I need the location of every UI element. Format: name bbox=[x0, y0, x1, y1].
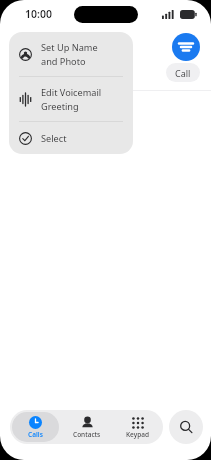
staticText: Call bbox=[175, 67, 191, 79]
button[interactable]: Filter calls bbox=[172, 33, 200, 61]
button[interactable]: Search bbox=[169, 410, 203, 444]
staticText: and Photo bbox=[41, 55, 86, 68]
button[interactable]: Contacts bbox=[63, 412, 110, 442]
staticText: Select bbox=[41, 132, 67, 145]
staticText: Set Up Name bbox=[41, 41, 98, 54]
staticText: 10:00 bbox=[25, 7, 52, 21]
staticText: Contacts bbox=[73, 430, 101, 439]
button[interactable]: Calls bbox=[12, 412, 59, 442]
staticText: Greeting bbox=[41, 100, 79, 113]
button[interactable]: Edit Voicemail bbox=[9, 77, 133, 121]
button[interactable]: Call bbox=[166, 63, 200, 82]
button[interactable]: Keypad bbox=[114, 412, 161, 442]
button[interactable]: Set Up Name bbox=[9, 32, 133, 76]
staticText: Keypad bbox=[126, 430, 149, 439]
button[interactable]: Select bbox=[9, 122, 133, 154]
staticText: Edit Voicemail bbox=[41, 86, 102, 99]
staticText: Calls bbox=[28, 430, 43, 439]
